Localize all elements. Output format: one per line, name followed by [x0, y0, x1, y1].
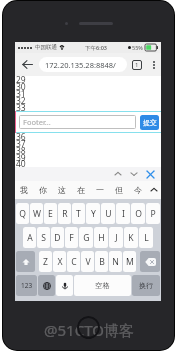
button[interactable]: Next field — [126, 167, 142, 181]
button[interactable]: S — [37, 227, 50, 248]
staticText: 但 — [115, 185, 123, 195]
button[interactable]: 这 — [52, 181, 71, 199]
staticText: 你 — [39, 185, 47, 195]
staticText: K — [128, 232, 134, 244]
button[interactable]: Close keyboard — [142, 167, 158, 181]
staticText: I — [122, 208, 125, 220]
staticText: R — [62, 208, 68, 220]
staticText: H — [98, 232, 105, 244]
button[interactable]: More options — [147, 53, 161, 76]
staticText: E — [48, 208, 53, 220]
staticText: N — [112, 256, 119, 268]
button[interactable]: Shift — [16, 251, 35, 272]
staticText: 172.20.135.28:8848/index.html — [45, 60, 127, 70]
staticText: Q — [19, 208, 26, 220]
staticText: 提交 — [143, 118, 157, 127]
button[interactable]: W — [30, 203, 43, 224]
staticText: 38 — [16, 145, 26, 157]
button[interactable]: V — [81, 251, 94, 272]
button[interactable]: B — [95, 251, 108, 272]
staticText: 中国联通 — [35, 44, 57, 51]
button[interactable]: Tabs — [127, 53, 147, 76]
button[interactable]: 在 — [71, 181, 90, 199]
button[interactable]: Previous field — [110, 167, 126, 181]
button[interactable]: M — [123, 251, 136, 272]
button[interactable]: 换行 — [132, 275, 160, 296]
button[interactable]: F — [65, 227, 78, 248]
staticText: 31 — [16, 88, 26, 100]
staticText: C — [71, 256, 77, 268]
staticText: 空格 — [95, 281, 110, 290]
button[interactable]: X — [53, 251, 66, 272]
staticText: 55% — [132, 44, 143, 51]
staticText: 今 — [134, 185, 142, 195]
button[interactable]: U — [101, 203, 115, 224]
button[interactable]: 但 — [109, 181, 128, 199]
button[interactable]: Dictate — [56, 275, 73, 296]
button[interactable]: T — [72, 203, 85, 224]
staticText: T — [76, 208, 81, 220]
button[interactable]: O — [131, 203, 145, 224]
staticText: J — [115, 232, 118, 244]
staticText: 这 — [58, 185, 66, 195]
staticText: S — [41, 232, 46, 244]
staticText: Z — [43, 256, 48, 268]
button[interactable]: E — [44, 203, 57, 224]
button[interactable]: Z — [39, 251, 52, 272]
button[interactable]: 我 — [15, 181, 33, 199]
button[interactable]: N — [109, 251, 122, 272]
button[interactable]: K — [124, 227, 138, 248]
button[interactable]: Back — [15, 53, 39, 76]
staticText: 32 — [16, 95, 26, 107]
staticText: 36 — [16, 131, 26, 143]
staticText: D — [54, 232, 61, 244]
staticText: L — [144, 232, 149, 244]
staticText: @51CTO博客 — [44, 320, 134, 340]
staticText: U — [105, 208, 112, 220]
staticText: O — [135, 208, 142, 220]
button[interactable]: 提交 — [140, 115, 159, 130]
staticText: 33 — [16, 102, 26, 114]
button[interactable]: More suggestions — [147, 181, 161, 199]
staticText: 40 — [16, 158, 26, 170]
button[interactable]: I — [116, 203, 130, 224]
staticText: P — [150, 208, 156, 220]
button[interactable]: Change language — [38, 275, 55, 296]
staticText: A — [27, 232, 33, 244]
staticText: 39 — [16, 152, 26, 164]
staticText: 一 — [96, 185, 104, 195]
button[interactable]: D — [51, 227, 64, 248]
button[interactable]: Delete — [140, 251, 160, 272]
button[interactable]: A — [23, 227, 36, 248]
button[interactable]: R — [58, 203, 71, 224]
staticText: F — [69, 232, 74, 244]
staticText: 29 — [16, 74, 26, 86]
button[interactable]: 今 — [128, 181, 147, 199]
staticText: Y — [91, 208, 96, 220]
staticText: V — [85, 256, 91, 268]
button[interactable]: Numbers — [16, 275, 37, 296]
button[interactable]: L — [139, 227, 153, 248]
button[interactable]: C — [67, 251, 80, 272]
staticText: M — [126, 256, 134, 268]
button[interactable]: Y — [86, 203, 100, 224]
staticText: 我 — [20, 185, 28, 195]
button[interactable]: 你 — [33, 181, 52, 199]
button[interactable]: P — [146, 203, 160, 224]
button[interactable]: H — [94, 227, 108, 248]
staticText: 123 — [21, 281, 33, 290]
button[interactable]: 一 — [90, 181, 109, 199]
staticText: W — [33, 208, 41, 220]
button[interactable]: Q — [16, 203, 29, 224]
button[interactable]: G — [79, 227, 93, 248]
staticText: G — [83, 232, 90, 244]
staticText: 在 — [77, 185, 85, 195]
button[interactable]: Footer... — [19, 115, 136, 129]
staticText: 30 — [16, 81, 26, 93]
button[interactable]: J — [109, 227, 123, 248]
staticText: 37 — [16, 138, 26, 150]
button[interactable]: 空格 — [74, 275, 131, 296]
staticText: 下午6:03 — [85, 44, 107, 52]
button[interactable]: 172.20.135.28:8848/index.html — [39, 57, 127, 72]
staticText: Footer... — [23, 117, 51, 127]
